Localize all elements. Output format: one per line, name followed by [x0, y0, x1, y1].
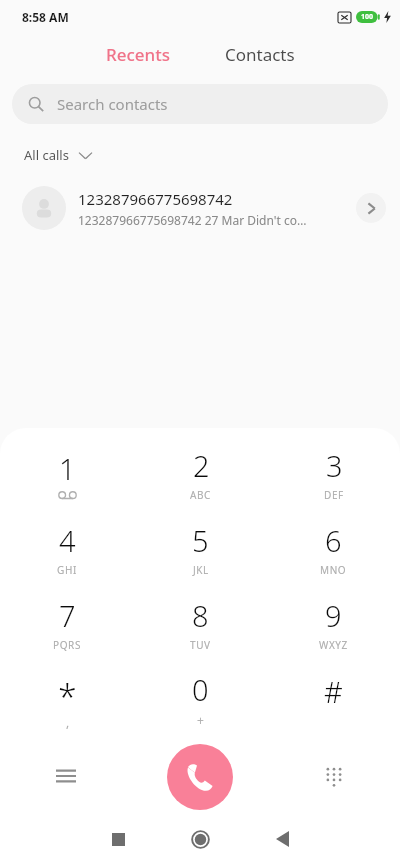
button[interactable]: 6	[267, 511, 400, 586]
button[interactable]: 7	[0, 586, 134, 661]
staticText: 123287966775698742 27 Mar Didn't co…	[78, 212, 307, 228]
staticText: 100	[361, 12, 374, 22]
button[interactable]: Recent apps	[98, 819, 138, 859]
staticText: 9	[325, 596, 342, 635]
button[interactable]: Keypad	[314, 756, 354, 796]
button[interactable]: 2	[134, 436, 267, 511]
button[interactable]: Contacts	[211, 37, 309, 72]
staticText: WXYZ	[319, 638, 348, 652]
staticText: 5	[192, 521, 209, 560]
button[interactable]: *	[0, 661, 134, 736]
staticText: DEF	[324, 488, 344, 502]
staticText: 3	[326, 446, 343, 485]
staticText: 0	[192, 670, 209, 709]
staticText: 7	[59, 596, 76, 635]
button[interactable]: Call	[167, 744, 233, 810]
staticText: #	[324, 672, 343, 711]
button[interactable]: 9	[267, 586, 400, 661]
button[interactable]: 4	[0, 511, 134, 586]
button[interactable]: #	[267, 661, 400, 736]
button[interactable]: 5	[134, 511, 267, 586]
staticText: ,	[66, 714, 70, 730]
button[interactable]: Recents	[92, 37, 185, 72]
staticText: Recents	[106, 43, 171, 66]
staticText: JKL	[193, 563, 209, 577]
button[interactable]: More options	[46, 756, 86, 796]
staticText: Contacts	[225, 43, 295, 66]
staticText: *	[58, 674, 77, 720]
staticText: GHI	[57, 563, 77, 577]
staticText: TUV	[190, 638, 211, 652]
button[interactable]: Back	[262, 819, 302, 859]
staticText: ABC	[190, 488, 212, 502]
button[interactable]: 8	[134, 586, 267, 661]
staticText: 6	[325, 521, 342, 560]
staticText: +	[197, 712, 204, 728]
button[interactable]: Home	[180, 819, 220, 859]
staticText: All calls	[24, 146, 69, 164]
button[interactable]: 0	[134, 661, 267, 736]
staticText: 123287966775698742	[78, 189, 233, 209]
button[interactable]: 3	[267, 436, 400, 511]
staticText: 2	[193, 446, 210, 485]
staticText: PQRS	[53, 638, 81, 652]
button[interactable]: Call details	[356, 193, 386, 223]
button[interactable]: 123287966775698742	[0, 178, 400, 238]
button[interactable]: All calls	[18, 140, 98, 170]
button[interactable]: 1	[0, 436, 134, 511]
staticText: 8:58 AM	[22, 9, 69, 25]
staticText: 8	[192, 596, 209, 635]
staticText: 4	[59, 521, 76, 560]
button[interactable]: Search contacts	[12, 84, 388, 124]
staticText: 1	[59, 449, 76, 488]
staticText: MNO	[320, 563, 347, 577]
staticText: Search contacts	[57, 94, 168, 114]
